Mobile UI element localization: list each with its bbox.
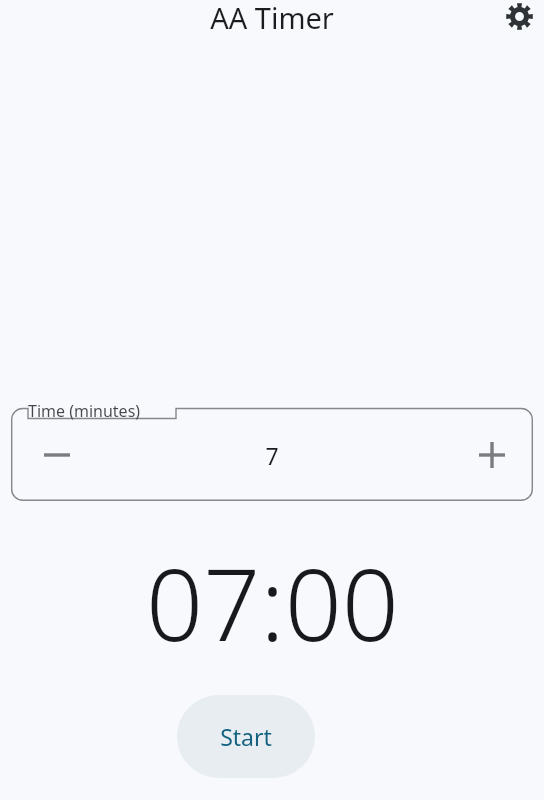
staticText: AA Timer bbox=[210, 0, 334, 32]
staticText: Start bbox=[220, 721, 272, 752]
button[interactable]: Settings bbox=[497, 0, 541, 33]
button[interactable]: Decrease minutes bbox=[33, 431, 81, 479]
button[interactable]: Start bbox=[177, 695, 315, 778]
staticText: Time (minutes) bbox=[28, 400, 141, 422]
staticText: 07:00 bbox=[146, 534, 399, 654]
staticText: 7 bbox=[265, 440, 279, 471]
button[interactable]: Increase minutes bbox=[468, 431, 516, 479]
